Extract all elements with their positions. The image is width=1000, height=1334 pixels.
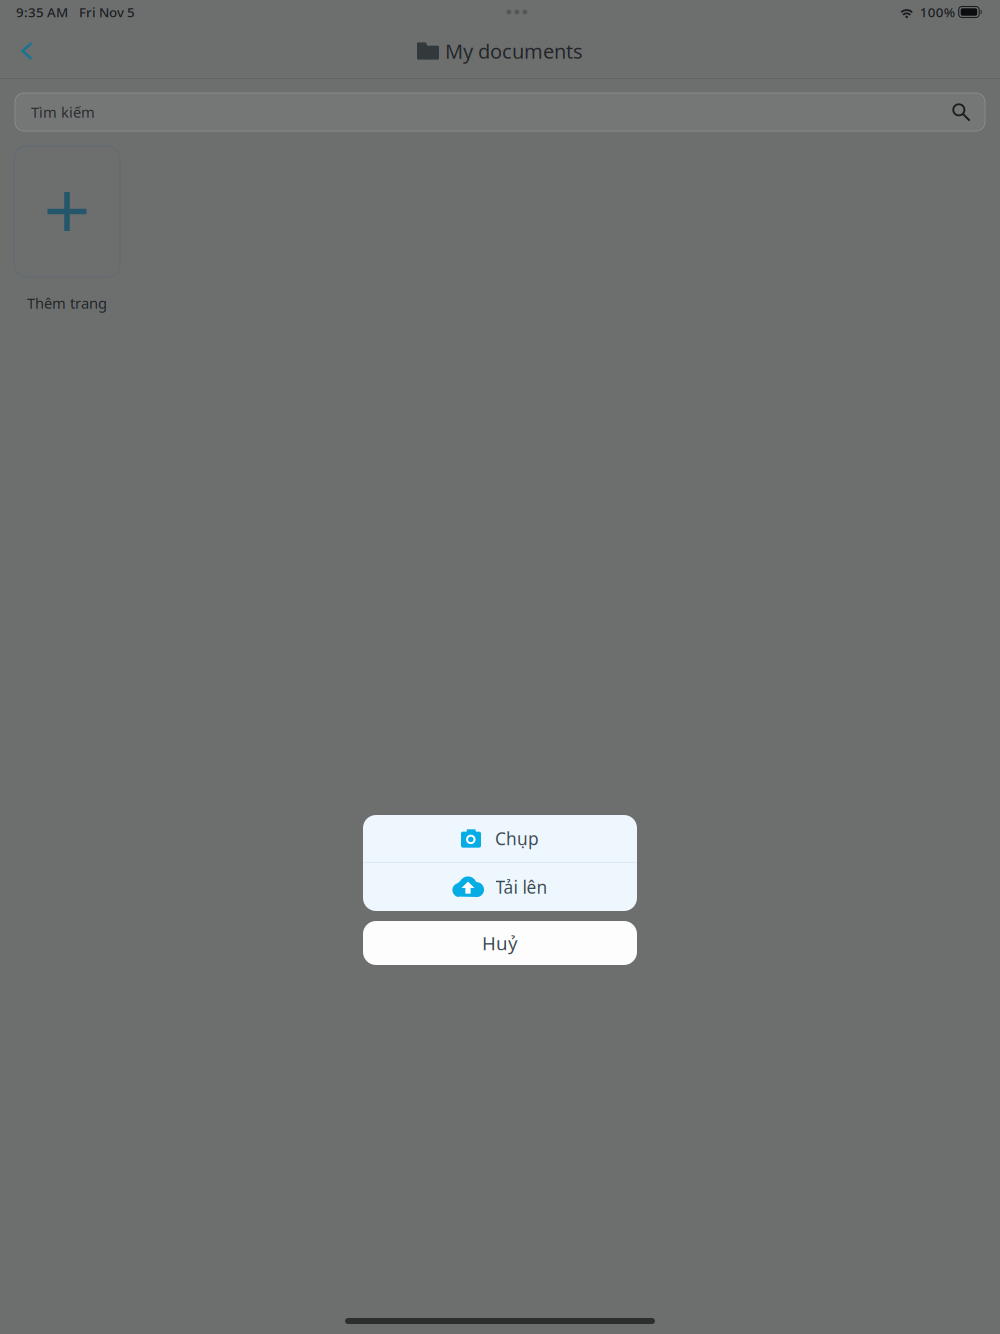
button[interactable]: Thêm trang	[14, 146, 120, 309]
staticText: Tải lên	[495, 875, 547, 898]
staticText: My documents	[445, 38, 583, 64]
button[interactable]: Huỷ	[363, 921, 637, 965]
staticText: Thêm trang	[27, 293, 107, 313]
button[interactable]: Tải lên	[363, 863, 637, 911]
staticText: Fri Nov 5	[79, 3, 135, 21]
button[interactable]: Back	[5, 29, 49, 73]
staticText: 9:35 AM	[16, 3, 68, 21]
staticText: 100%	[920, 3, 955, 21]
staticText: Huỷ	[482, 931, 518, 955]
staticText: Tìm kiếm	[31, 102, 95, 122]
button[interactable]: Chụp	[363, 815, 637, 862]
staticText: Chụp	[495, 827, 539, 850]
button[interactable]: Tìm kiếm	[15, 93, 985, 131]
